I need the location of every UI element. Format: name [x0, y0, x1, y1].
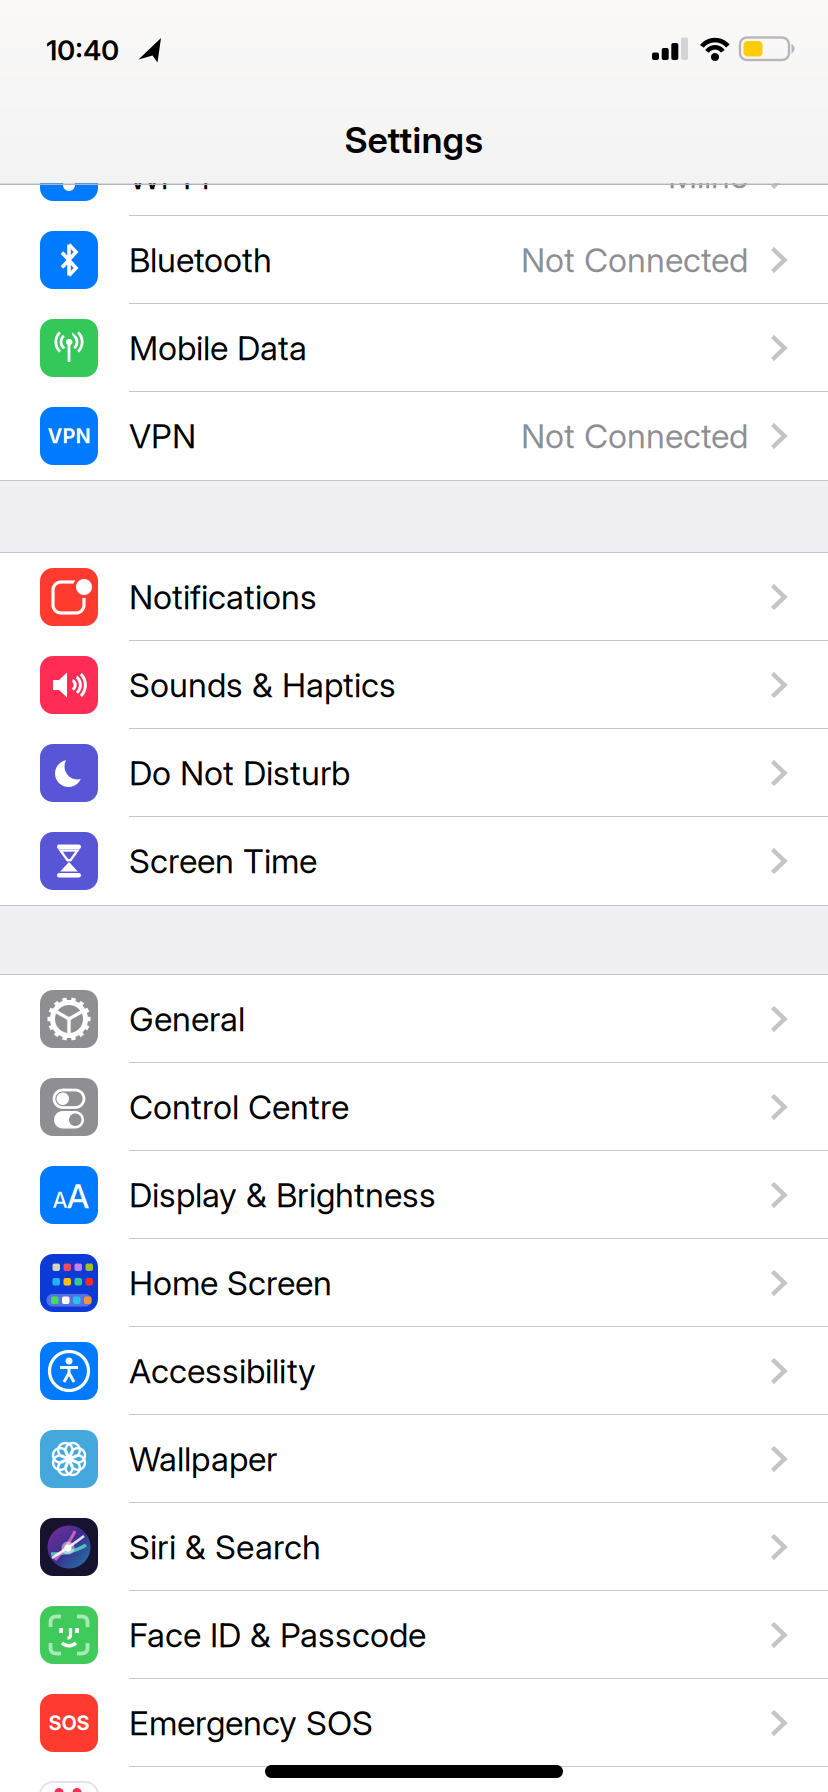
staticText: Accessibility [129, 1351, 316, 1391]
staticText: Notifications [129, 577, 317, 617]
button[interactable]: VPN [0, 392, 828, 480]
button[interactable]: Control Centre [0, 1063, 828, 1151]
button[interactable]: Accessibility [0, 1327, 828, 1415]
button[interactable]: Home Screen [0, 1239, 828, 1327]
button[interactable]: SOS [0, 1679, 828, 1767]
button[interactable]: General [0, 975, 828, 1063]
button[interactable]: Bluetooth [0, 216, 828, 304]
button[interactable]: A [0, 1151, 828, 1239]
staticText: A [52, 1187, 67, 1213]
staticText: Sounds & Haptics [129, 665, 396, 705]
staticText: Mobile Data [129, 328, 307, 368]
button[interactable]: Sounds & Haptics [0, 641, 828, 729]
staticText: Milne [668, 156, 748, 196]
staticText: 10:40 [46, 33, 119, 66]
staticText: Bluetooth [129, 240, 272, 280]
button[interactable]: Do Not Disturb [0, 729, 828, 817]
button[interactable]: Face ID & Passcode [0, 1591, 828, 1679]
button[interactable]: Siri & Search [0, 1503, 828, 1591]
button[interactable]: Notifications [0, 553, 828, 641]
staticText: Settings [344, 119, 483, 161]
staticText: VPN [47, 424, 90, 448]
staticText: Screen Time [129, 841, 317, 881]
staticText: General [129, 999, 245, 1039]
staticText: Emergency SOS [129, 1703, 373, 1743]
staticText: SOS [48, 1711, 89, 1735]
staticText: Not Connected [521, 416, 748, 456]
staticText: VPN [129, 416, 196, 456]
staticText: Siri & Search [129, 1527, 321, 1567]
button[interactable]: Wi-Fi [0, 128, 828, 216]
staticText: A [66, 1176, 89, 1216]
staticText: Wallpaper [129, 1439, 277, 1479]
button[interactable]: Wallpaper [0, 1415, 828, 1503]
staticText: Face ID & Passcode [129, 1615, 426, 1655]
staticText: Display & Brightness [129, 1175, 436, 1215]
staticText: Wi-Fi [129, 157, 209, 197]
staticText: Home Screen [129, 1263, 332, 1303]
staticText: Control Centre [129, 1087, 349, 1127]
button[interactable]: Screen Time [0, 817, 828, 905]
staticText: Do Not Disturb [129, 753, 350, 793]
staticText: Not Connected [521, 240, 748, 280]
button[interactable]: Mobile Data [0, 304, 828, 392]
